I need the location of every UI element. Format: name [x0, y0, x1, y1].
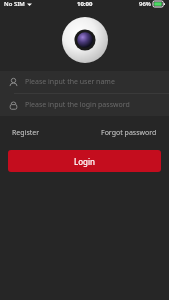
staticText: 10:00 — [77, 0, 93, 8]
staticText: Please input the login password — [25, 100, 130, 110]
staticText: 96% — [139, 0, 151, 8]
button[interactable]: Login — [8, 150, 161, 172]
staticText: Login — [74, 156, 95, 167]
button[interactable]: Forgot password — [97, 124, 161, 142]
button[interactable]: Register — [8, 124, 44, 142]
staticText: No SIM — [4, 0, 25, 8]
button[interactable]: Please input the login password — [0, 94, 169, 116]
button[interactable]: Please input the user name — [0, 71, 169, 93]
staticText: Please input the user name — [25, 77, 115, 87]
